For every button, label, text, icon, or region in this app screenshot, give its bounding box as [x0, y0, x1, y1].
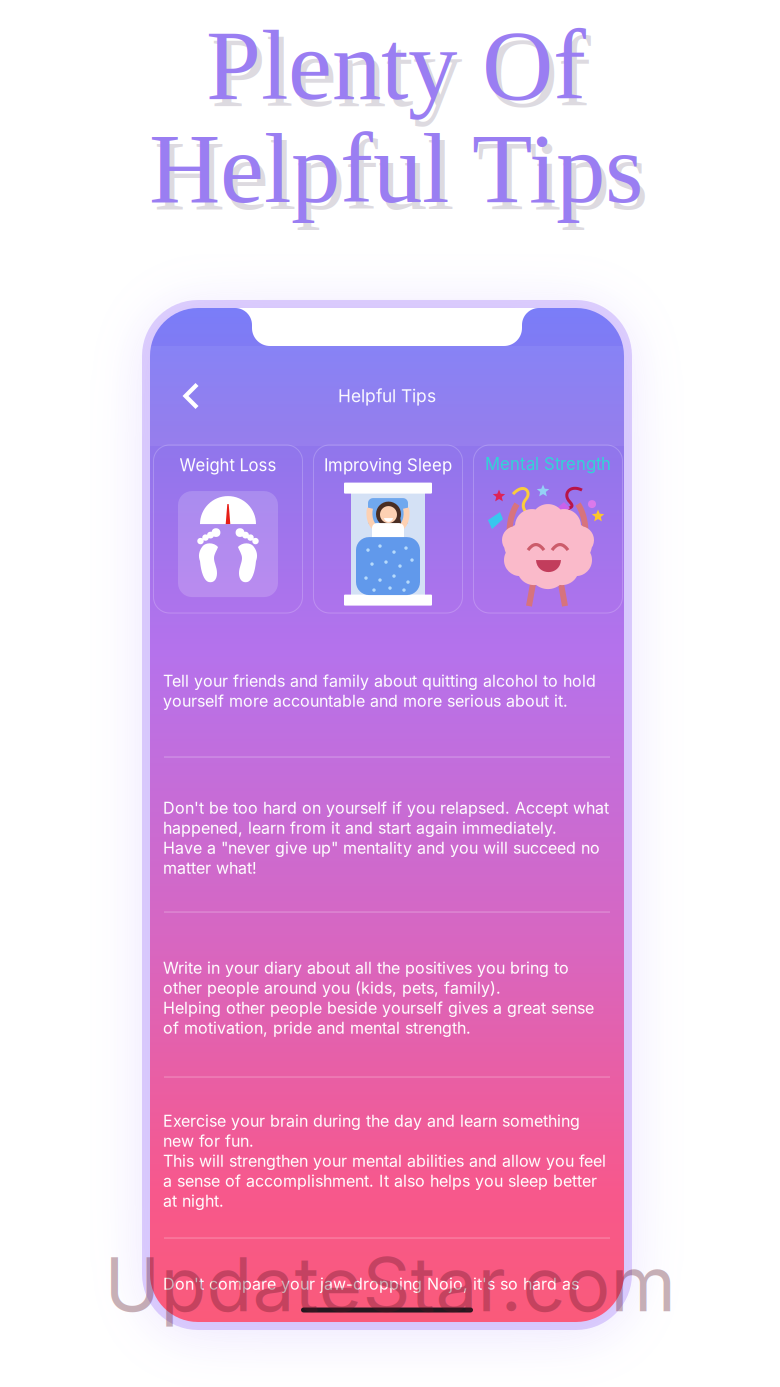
staticText: Helpful Tips: [149, 114, 643, 223]
button[interactable]: Improving Sleep: [313, 445, 462, 613]
staticText: Mental Strength: [485, 454, 611, 474]
staticText: yourself more accountable and more serio…: [163, 691, 568, 711]
button[interactable]: Mental Strength: [473, 445, 622, 613]
staticText: happened, learn from it and start again …: [163, 818, 557, 838]
staticText: Don't be too hard on yourself if you rel…: [163, 798, 609, 818]
staticText: Plenty Of: [211, 18, 591, 127]
staticText: other people around you (kids, pets, fam…: [163, 978, 501, 998]
staticText: This will strengthen your mental abiliti…: [163, 1151, 606, 1171]
staticText: Exercise your brain during the day and l…: [163, 1111, 580, 1131]
staticText: at night.: [163, 1191, 224, 1211]
button[interactable]: Weight Loss: [153, 445, 302, 613]
staticText: Improving Sleep: [324, 455, 452, 475]
staticText: Helping other people beside yourself giv…: [163, 998, 594, 1018]
staticText: Helpful Tips: [154, 121, 648, 230]
staticText: Helpful Tips: [338, 385, 436, 406]
staticText: a sense of accomplishment. It also helps…: [163, 1171, 597, 1191]
staticText: Don't compare your jaw-dropping Nojo, it…: [163, 1274, 579, 1294]
staticText: UpdateStar.com: [104, 1239, 675, 1329]
staticText: new for fun.: [163, 1131, 254, 1151]
staticText: of motivation, pride and mental strength…: [163, 1018, 471, 1038]
staticText: matter what!: [163, 858, 257, 878]
button[interactable]: Back: [164, 369, 218, 423]
staticText: Tell your friends and family about quitt…: [163, 671, 596, 691]
staticText: Have a "never give up" mentality and you…: [163, 838, 600, 858]
staticText: Write in your diary about all the positi…: [163, 958, 569, 978]
staticText: Weight Loss: [179, 455, 276, 475]
staticText: Plenty Of: [206, 11, 586, 120]
